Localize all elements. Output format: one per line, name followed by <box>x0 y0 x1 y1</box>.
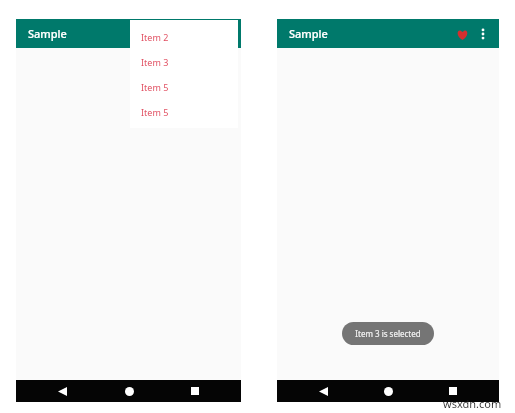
button[interactable]: Home <box>119 381 139 401</box>
staticText: Item 5 <box>141 81 169 93</box>
button[interactable]: Favorite <box>451 23 473 45</box>
staticText: wsxdn.com <box>443 396 502 411</box>
staticText: Item 3 <box>141 56 169 68</box>
staticText: Sample <box>289 26 328 41</box>
button[interactable]: Back <box>313 381 333 401</box>
staticText: Item 5 <box>141 106 169 118</box>
staticText: Item 3 is selected <box>355 328 421 339</box>
button[interactable]: Item 5 <box>130 74 238 99</box>
button[interactable]: Item 5 <box>130 99 238 124</box>
button[interactable]: Item 3 <box>130 49 238 74</box>
staticText: Item 2 <box>141 31 169 43</box>
button[interactable]: Recents <box>185 381 205 401</box>
button[interactable]: Recents <box>443 381 463 401</box>
staticText: Sample <box>28 26 67 41</box>
button[interactable]: More options <box>473 24 493 44</box>
button[interactable]: Item 2 <box>130 24 238 49</box>
button[interactable]: Back <box>52 381 72 401</box>
button[interactable]: Home <box>378 381 398 401</box>
